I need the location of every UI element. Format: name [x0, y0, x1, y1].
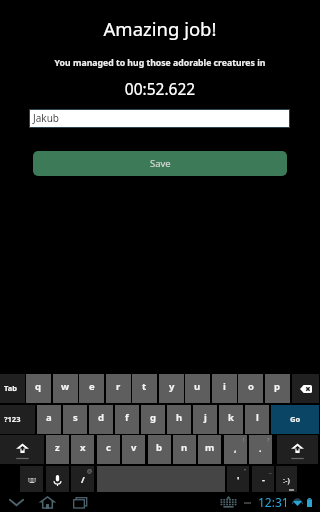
button[interactable]: m — [198, 435, 221, 464]
staticText: c — [106, 441, 111, 454]
staticText: , — [234, 442, 237, 454]
staticText: v — [131, 441, 137, 454]
button[interactable]: u — [185, 374, 210, 403]
button[interactable]: Symbols — [0, 405, 35, 434]
button[interactable]: Space — [97, 466, 225, 495]
staticText: s — [73, 411, 78, 424]
staticText: ! — [243, 436, 245, 443]
staticText: Save — [150, 157, 171, 170]
button[interactable]: Emoticons — [276, 466, 297, 495]
staticText: w — [61, 380, 70, 393]
button[interactable]: . — [249, 435, 272, 464]
button[interactable]: Jakub — [30, 110, 289, 127]
staticText: d — [98, 411, 105, 424]
staticText: y — [169, 380, 175, 393]
staticText: n — [181, 441, 188, 454]
button[interactable]: g — [141, 405, 165, 434]
staticText: - — [262, 473, 265, 485]
staticText: x — [80, 441, 86, 454]
staticText: b — [156, 441, 163, 454]
button[interactable]: b — [148, 435, 171, 464]
staticText: You managed to hug those adorable creatu… — [0, 57, 320, 69]
button[interactable]: o — [238, 374, 263, 403]
button[interactable]: c — [97, 435, 120, 464]
staticText: h — [176, 411, 183, 424]
button[interactable]: q — [26, 374, 51, 403]
staticText: " — [244, 467, 247, 474]
staticText: _ — [269, 467, 272, 474]
staticText: z — [55, 441, 60, 454]
button[interactable]: n — [173, 435, 196, 464]
button[interactable]: Back — [5, 492, 27, 512]
staticText: e — [89, 380, 95, 393]
staticText: f — [125, 411, 129, 424]
button[interactable]: ' — [227, 466, 249, 495]
staticText: ' — [237, 473, 240, 485]
button[interactable]: / — [71, 466, 94, 495]
button[interactable]: Delete — [292, 374, 319, 403]
staticText: 00:52.622 — [0, 78, 320, 99]
staticText: a — [46, 411, 52, 424]
button[interactable]: Voice input — [46, 466, 69, 495]
button[interactable]: Shift — [0, 435, 44, 464]
button[interactable]: , — [224, 435, 247, 464]
button[interactable]: - — [252, 466, 274, 495]
button[interactable]: Shift — [277, 435, 318, 464]
staticText: g — [150, 411, 157, 424]
button[interactable]: Save — [33, 151, 287, 176]
staticText: q — [35, 380, 42, 393]
button[interactable]: Go — [271, 405, 319, 434]
button[interactable]: f — [115, 405, 139, 434]
staticText: ?123 — [4, 414, 21, 424]
button[interactable]: v — [122, 435, 145, 464]
staticText: k — [228, 411, 234, 424]
staticText: j — [204, 411, 207, 424]
button[interactable]: l — [245, 405, 269, 434]
button[interactable]: Tab — [0, 374, 25, 403]
button[interactable]: z — [46, 435, 69, 464]
staticText: Amazing job! — [0, 16, 320, 41]
staticText: i — [223, 380, 226, 393]
button[interactable]: t — [132, 374, 157, 403]
staticText: 12:31 — [258, 494, 289, 510]
button[interactable]: j — [193, 405, 217, 434]
button[interactable]: Home — [36, 492, 58, 512]
staticText: / — [81, 473, 85, 485]
button[interactable]: Change keyboard — [20, 466, 43, 495]
button[interactable]: k — [219, 405, 243, 434]
button[interactable]: y — [159, 374, 184, 403]
staticText: ? — [267, 436, 270, 443]
staticText: @ — [87, 467, 92, 474]
button[interactable]: h — [167, 405, 191, 434]
staticText: . — [259, 442, 262, 454]
button[interactable]: Choose input method — [219, 492, 237, 512]
staticText: Go — [290, 414, 301, 424]
staticText: Tab — [4, 383, 17, 393]
button[interactable]: a — [37, 405, 61, 434]
staticText: l — [256, 411, 259, 424]
button[interactable]: d — [89, 405, 113, 434]
button[interactable]: e — [79, 374, 104, 403]
staticText: r — [116, 380, 121, 393]
button[interactable]: i — [212, 374, 237, 403]
staticText: o — [248, 380, 254, 393]
staticText: u — [194, 380, 201, 393]
staticText: Jakub — [33, 111, 60, 125]
button[interactable]: Recent apps — [69, 492, 91, 512]
button[interactable]: s — [63, 405, 87, 434]
staticText: :-) — [283, 475, 290, 485]
staticText: t — [142, 380, 147, 393]
staticText: p — [274, 380, 281, 393]
button[interactable]: r — [106, 374, 131, 403]
button[interactable]: w — [53, 374, 78, 403]
button[interactable]: x — [71, 435, 94, 464]
button[interactable]: p — [265, 374, 290, 403]
staticText: m — [205, 441, 215, 454]
